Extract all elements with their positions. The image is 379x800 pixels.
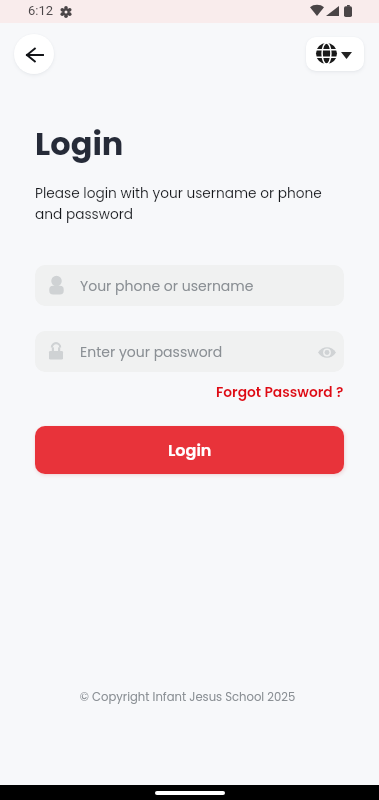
staticText: 6:12 xyxy=(28,3,54,18)
button[interactable]: Back xyxy=(14,34,54,74)
staticText: Your phone or username xyxy=(80,276,254,296)
staticText: Enter your password xyxy=(80,342,223,362)
staticText: Please login with your username or phone… xyxy=(35,184,340,223)
button[interactable]: Your phone or username xyxy=(35,265,344,306)
staticText: © Copyright Infant Jesus School 2025 xyxy=(0,689,377,705)
button[interactable]: Enter your password xyxy=(35,331,344,372)
staticText: Forgot Password ? xyxy=(216,383,344,402)
button[interactable]: Show password xyxy=(316,341,338,363)
button[interactable]: Forgot Password ? xyxy=(216,383,344,402)
button[interactable]: Login xyxy=(35,426,344,474)
button[interactable]: Change language xyxy=(306,37,364,71)
staticText: Login xyxy=(35,121,124,166)
staticText: Login xyxy=(168,439,212,461)
